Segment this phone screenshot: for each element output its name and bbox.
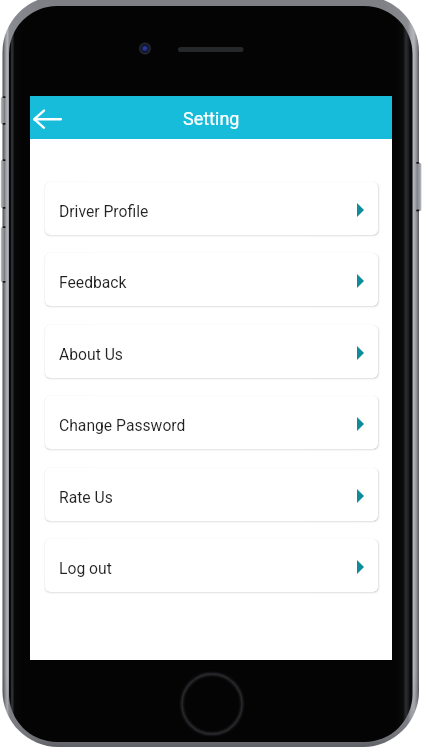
button[interactable]: Feedback (45, 253, 378, 306)
staticText: Log out (59, 559, 112, 577)
staticText: Driver Profile (59, 202, 149, 220)
button[interactable]: About Us (45, 325, 378, 378)
staticText: Rate Us (59, 488, 113, 506)
staticText: About Us (59, 345, 123, 363)
staticText: Change Password (59, 416, 186, 434)
button[interactable]: Back (30, 96, 70, 139)
button[interactable]: Driver Profile (45, 182, 378, 235)
staticText: Setting (183, 108, 240, 129)
staticText: Feedback (59, 273, 127, 291)
button[interactable]: Log out (45, 539, 378, 592)
button[interactable]: Change Password (45, 396, 378, 449)
button[interactable]: Rate Us (45, 468, 378, 521)
